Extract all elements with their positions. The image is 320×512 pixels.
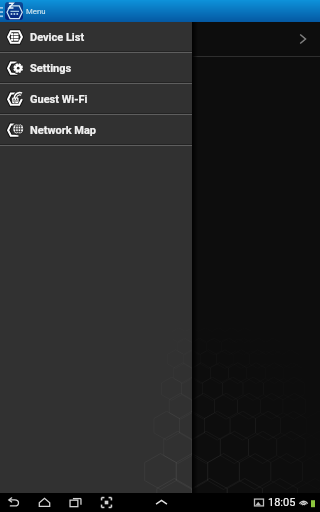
- staticText: Device List: [30, 31, 85, 44]
- button[interactable]: Device List: [0, 22, 192, 51]
- staticText: Network Map: [30, 124, 97, 137]
- staticText: Settings: [30, 62, 72, 75]
- staticText: 18:05: [268, 496, 296, 509]
- button[interactable]: Network Map: [0, 115, 192, 144]
- button[interactable]: Settings: [0, 53, 192, 82]
- staticText: Menu: [26, 7, 46, 16]
- button[interactable]: Back: [0, 493, 29, 512]
- button[interactable]: Recents: [60, 493, 91, 512]
- button[interactable]: Screenshot: [91, 493, 122, 512]
- button[interactable]: Guest Wi-Fi: [0, 84, 192, 113]
- staticText: Guest Wi-Fi: [30, 93, 88, 106]
- button[interactable]: App logo: [5, 2, 23, 20]
- button[interactable]: Show keyboard: [146, 493, 177, 512]
- button[interactable]: Expand: [192, 22, 320, 56]
- button[interactable]: Home: [29, 493, 60, 512]
